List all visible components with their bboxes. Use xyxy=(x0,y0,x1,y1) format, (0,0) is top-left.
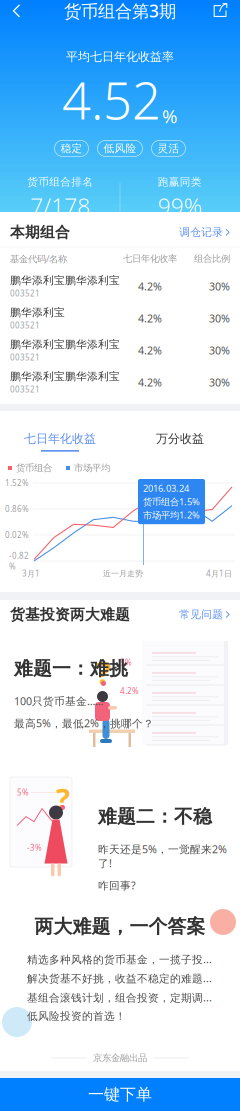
staticText: 组合比例 xyxy=(194,253,230,264)
staticText: 货基投资两大难题 xyxy=(10,605,130,623)
staticText: 鹏华添利宝鹏华添利宝 xyxy=(10,338,120,351)
staticText: 货币组合 xyxy=(16,462,52,474)
staticText: 难题一：难挑 xyxy=(14,657,128,680)
staticText: % xyxy=(162,104,178,128)
staticText: 货币组合1.5% xyxy=(143,495,200,508)
staticText: 货币组合排名 xyxy=(27,175,93,189)
staticText: 30% xyxy=(209,343,230,357)
staticText: 灵活 xyxy=(157,142,179,155)
staticText: 30% xyxy=(209,375,230,389)
staticText: 精选多种风格的货币基金，一揽子投资， xyxy=(27,952,213,966)
button[interactable]: 常见问题 xyxy=(171,602,230,627)
staticText: 30% xyxy=(209,311,230,325)
staticText: 003521 xyxy=(10,384,40,395)
staticText: ? xyxy=(96,651,111,693)
staticText: 货币组合第3期 xyxy=(64,0,176,22)
button[interactable]: 七日年化收益 xyxy=(0,421,120,457)
staticText: 昨天还是5%，一觉醒来2%了! xyxy=(98,842,227,870)
staticText: 低风险 xyxy=(103,142,136,155)
staticText: 4.2% xyxy=(138,279,162,293)
button[interactable]: 万分收益 xyxy=(120,421,240,457)
button[interactable]: Back xyxy=(5,1,35,21)
staticText: 低风险投资的首选！ xyxy=(27,1010,126,1023)
staticText: 常见问题 xyxy=(179,608,223,621)
staticText: 调仓记录 xyxy=(179,226,223,239)
staticText: 稳定 xyxy=(60,142,82,155)
staticText: 4.2% xyxy=(138,375,162,389)
staticText: 解决货基不好挑，收益不稳定的难题！货 xyxy=(27,971,213,985)
staticText: 5% xyxy=(17,787,29,798)
staticText: 1.52% xyxy=(5,478,29,488)
staticText: 4月1日 xyxy=(206,568,232,579)
staticText: 平均七日年化收益率 xyxy=(66,49,174,64)
staticText: 两大难题，一个答案 xyxy=(34,915,205,938)
staticText: 京东金融出品 xyxy=(93,1052,147,1064)
staticText: 难题二：不稳 xyxy=(98,805,212,828)
staticText: ? xyxy=(56,779,70,818)
staticText: 万分收益 xyxy=(156,431,204,446)
staticText: 4.2% xyxy=(120,686,139,696)
staticText: 4.2% xyxy=(138,311,162,325)
staticText: 30% xyxy=(209,279,230,293)
staticText: -0.82% xyxy=(9,550,29,572)
staticText: 鹏华添利宝 xyxy=(10,306,65,319)
staticText: 跑赢同类 xyxy=(158,175,202,189)
staticText: 003521 xyxy=(10,320,40,331)
button[interactable]: 一键下单 xyxy=(0,1078,240,1111)
staticText: 一键下单 xyxy=(88,1085,152,1104)
staticText: 0.02% xyxy=(5,530,29,540)
staticText: 3月1 xyxy=(22,568,40,579)
staticText: 7/178 xyxy=(30,191,90,221)
staticText: 近一月走势 xyxy=(103,569,143,578)
staticText: 鹏华添利宝鹏华添利宝 xyxy=(10,274,120,287)
staticText: 99% xyxy=(158,191,202,221)
staticText: 003521 xyxy=(10,288,40,299)
staticText: 2016.03.24 xyxy=(143,482,189,494)
staticText: 市场平均 xyxy=(74,462,110,474)
staticText: 本期组合 xyxy=(10,223,70,241)
staticText: 003521 xyxy=(10,352,40,363)
staticText: -3% xyxy=(27,842,42,853)
staticText: 七日年化收益 xyxy=(24,431,96,446)
staticText: 0.86% xyxy=(5,504,29,514)
button[interactable]: 调仓记录 xyxy=(171,220,230,245)
staticText: 鹏华添利宝鹏华添利宝 xyxy=(10,370,120,383)
staticText: 5% xyxy=(120,657,132,668)
staticText: 市场平均1.2% xyxy=(143,509,200,521)
button[interactable]: Share xyxy=(206,1,235,21)
staticText: 100只货币基金…… xyxy=(14,694,103,708)
staticText: 基组合滚钱计划，组合投资，定期调仓， xyxy=(27,990,213,1005)
staticText: 4.52 xyxy=(62,66,161,133)
staticText: 咋回事? xyxy=(98,878,136,892)
staticText: 4.2% xyxy=(138,343,162,357)
staticText: 七日年化收率 xyxy=(123,253,177,264)
staticText: 最高5%，最低2%，挑哪个？ xyxy=(14,716,154,730)
staticText: 基金代码/名称 xyxy=(10,253,67,265)
